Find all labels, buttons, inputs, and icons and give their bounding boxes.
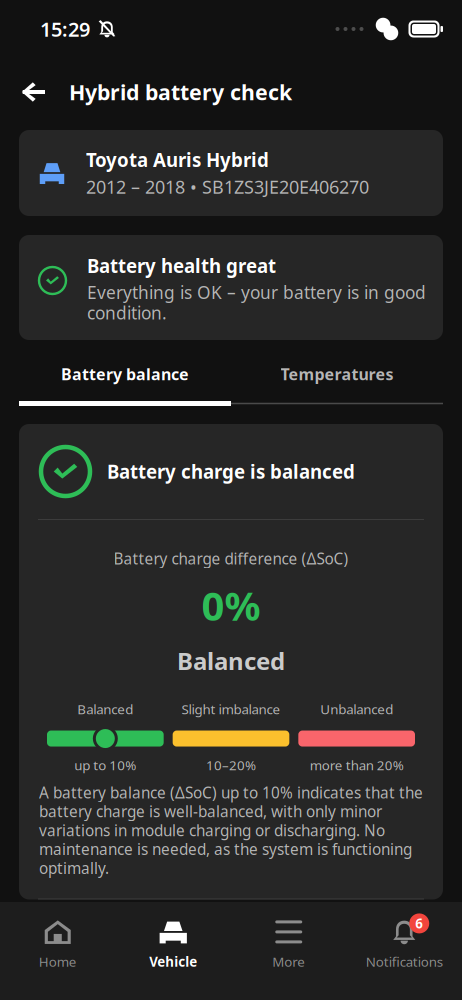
button[interactable]: More bbox=[231, 909, 346, 993]
button[interactable]: Temperatures bbox=[231, 352, 443, 401]
staticText: up to 10% bbox=[74, 756, 136, 774]
staticText: Battery health great bbox=[87, 253, 276, 278]
staticText: 2012 – 2018 • SB1ZS3JE20E406270 bbox=[86, 174, 369, 199]
button[interactable]: Toyota Auris Hybrid bbox=[19, 130, 443, 216]
staticText: Home bbox=[39, 952, 77, 971]
staticText: 6 bbox=[415, 914, 423, 932]
staticText: Vehicle bbox=[149, 952, 197, 971]
staticText: Unbalanced bbox=[320, 700, 393, 718]
staticText: Battery balance bbox=[61, 363, 189, 385]
button[interactable]: 6 bbox=[346, 909, 462, 993]
staticText: more than 20% bbox=[310, 756, 404, 774]
staticText: 15:29 bbox=[40, 15, 90, 43]
staticText: Hybrid battery check bbox=[69, 77, 292, 107]
staticText: Temperatures bbox=[280, 363, 393, 385]
button[interactable]: Battery balance bbox=[19, 352, 231, 401]
staticText: 10–20% bbox=[206, 756, 256, 774]
staticText: 0% bbox=[201, 578, 260, 632]
staticText: Everything is OK – your battery is in go… bbox=[87, 280, 426, 325]
staticText: Battery charge is balanced bbox=[107, 459, 355, 484]
button[interactable]: Back bbox=[11, 68, 56, 119]
staticText: Balanced bbox=[177, 644, 285, 677]
button[interactable]: Vehicle bbox=[115, 909, 231, 993]
staticText: Balanced bbox=[77, 700, 133, 718]
staticText: Slight imbalance bbox=[181, 700, 280, 718]
button[interactable]: Home bbox=[0, 909, 115, 993]
staticText: A battery balance (ΔSoC) up to 10% indic… bbox=[39, 782, 423, 878]
staticText: Battery charge difference (ΔSoC) bbox=[113, 548, 348, 569]
staticText: Notifications bbox=[366, 952, 443, 971]
staticText: Toyota Auris Hybrid bbox=[86, 147, 269, 172]
staticText: More bbox=[272, 952, 305, 971]
